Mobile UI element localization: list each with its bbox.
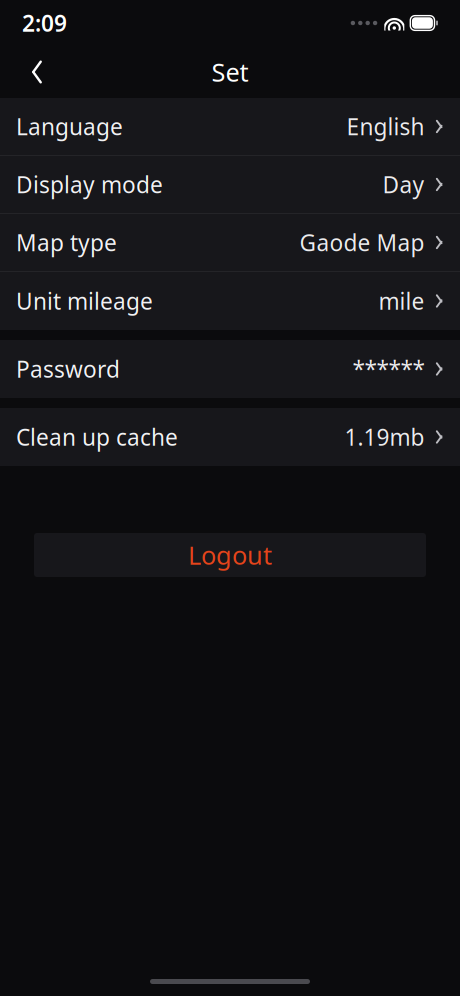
staticText: Day	[382, 169, 424, 199]
staticText: Map type	[16, 227, 117, 257]
staticText: 1.19mb	[344, 422, 424, 452]
staticText: 2:09	[22, 8, 67, 38]
staticText: Unit mileage	[16, 286, 153, 316]
staticText: English	[346, 111, 424, 141]
staticText: Password	[16, 354, 120, 384]
button[interactable]: Language	[0, 98, 460, 156]
button[interactable]: Display mode	[0, 156, 460, 214]
staticText: Language	[16, 111, 123, 141]
staticText: Display mode	[16, 169, 163, 199]
button[interactable]: Back	[14, 50, 60, 94]
button[interactable]: Password	[0, 340, 460, 398]
staticText: Clean up cache	[16, 422, 178, 452]
staticText: mile	[378, 286, 424, 316]
staticText: Logout	[188, 538, 272, 572]
button[interactable]: Unit mileage	[0, 272, 460, 330]
staticText: ******	[352, 354, 424, 384]
button[interactable]: Clean up cache	[0, 408, 460, 466]
button[interactable]: Logout	[34, 533, 426, 577]
staticText: Gaode Map	[299, 227, 424, 257]
staticText: Set	[211, 55, 248, 89]
button[interactable]: Map type	[0, 214, 460, 272]
